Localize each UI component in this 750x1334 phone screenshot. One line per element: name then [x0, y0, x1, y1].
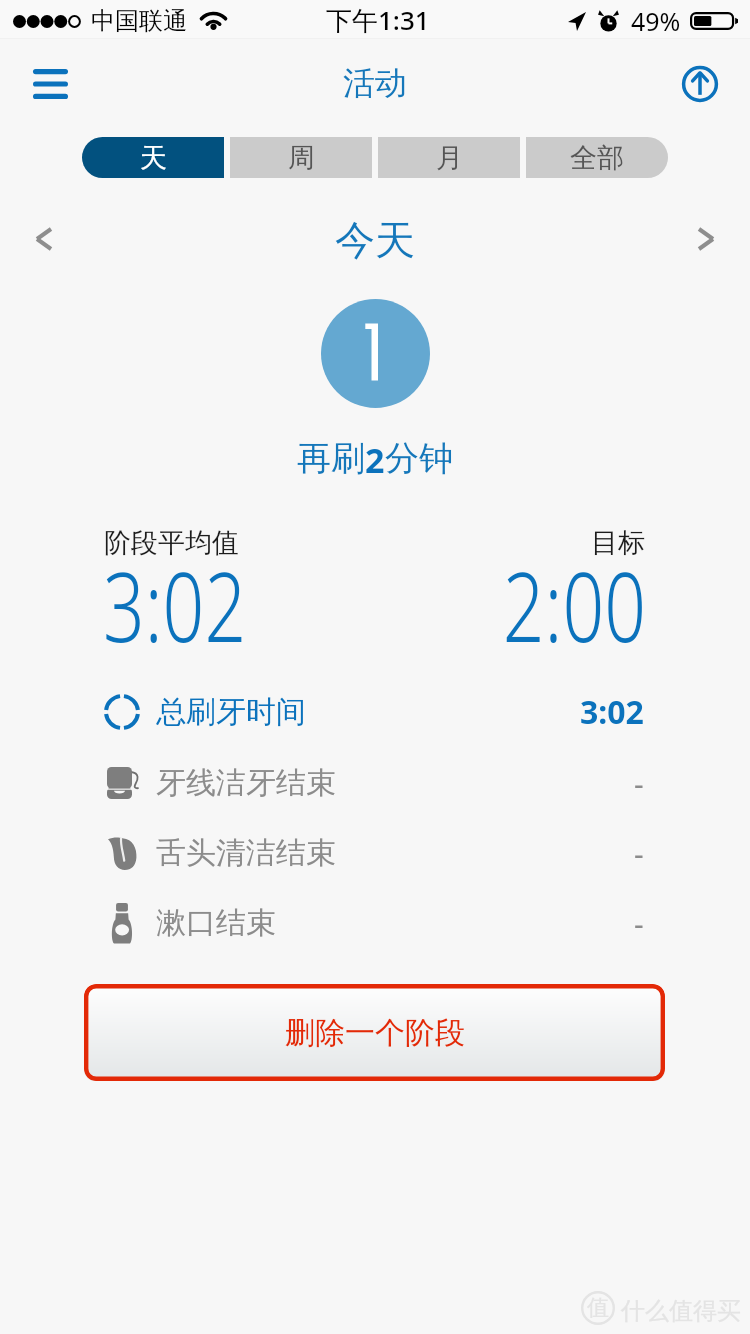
staticText: 分钟	[385, 437, 453, 480]
button[interactable]: 漱口结束	[100, 888, 644, 958]
button[interactable]: 月	[378, 137, 520, 178]
staticText: 今天	[335, 215, 415, 265]
staticText: 下午1:31	[326, 2, 430, 38]
staticText: 值	[587, 1294, 609, 1322]
staticText: 目标	[591, 526, 645, 560]
button[interactable]: 全部	[526, 137, 668, 178]
button[interactable]: 周	[230, 137, 372, 178]
staticText: 删除一个阶段	[285, 1014, 465, 1052]
staticText: 总刷牙时间	[156, 693, 306, 731]
staticText: -	[634, 903, 644, 944]
staticText: 3:02	[103, 540, 246, 669]
button[interactable]: Menu	[14, 52, 86, 116]
staticText: 2	[365, 437, 385, 483]
button[interactable]: Next day	[678, 207, 734, 271]
staticText: 漱口结束	[156, 904, 276, 942]
staticText: 活动	[343, 63, 407, 103]
staticText: 什么值得买	[621, 1296, 741, 1326]
staticText: 全部	[570, 141, 624, 175]
staticText: 再刷	[297, 437, 365, 480]
staticText: 周	[288, 141, 315, 175]
staticText: 舌头清洁结束	[156, 834, 336, 872]
staticText: 3:02	[580, 690, 644, 734]
button[interactable]: 牙线洁牙结束	[100, 748, 644, 818]
staticText: 月	[436, 141, 463, 175]
staticText: 天	[140, 141, 167, 175]
button[interactable]: 删除一个阶段	[84, 984, 665, 1081]
staticText: 49%	[631, 4, 681, 38]
button[interactable]: 舌头清洁结束	[100, 818, 644, 888]
staticText: 牙线洁牙结束	[156, 764, 336, 802]
button[interactable]: 总刷牙时间	[100, 677, 644, 747]
button[interactable]: Previous day	[16, 207, 72, 271]
staticText: 中国联通	[91, 6, 187, 36]
staticText: 2:00	[503, 540, 646, 669]
button[interactable]: Upload	[669, 52, 731, 116]
staticText: -	[634, 763, 644, 804]
staticText: -	[634, 833, 644, 874]
button[interactable]: 天	[82, 137, 224, 178]
staticText: 阶段平均值	[104, 526, 239, 560]
